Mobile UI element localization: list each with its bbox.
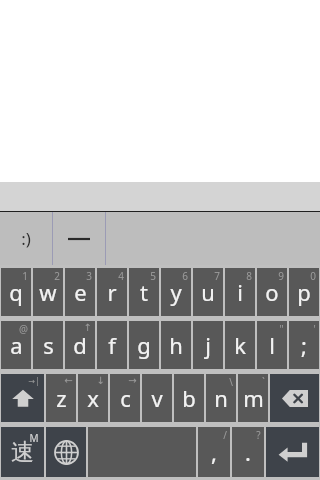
button[interactable]: o <box>257 268 287 316</box>
button[interactable]: p <box>289 268 319 316</box>
button[interactable]: Change keyboard language <box>46 427 86 477</box>
button[interactable]: 速 <box>1 427 44 477</box>
button[interactable]: x <box>78 374 108 422</box>
staticText: g <box>137 330 151 360</box>
button[interactable]: f <box>97 321 127 369</box>
button[interactable] <box>53 212 105 265</box>
button[interactable]: Enter <box>266 427 319 477</box>
button[interactable]: g <box>129 321 159 369</box>
staticText: ; <box>301 330 307 360</box>
button[interactable]: j <box>193 321 223 369</box>
staticText: ` <box>262 375 265 389</box>
staticText: l <box>269 330 275 360</box>
button[interactable]: y <box>161 268 191 316</box>
staticText: v <box>151 383 163 413</box>
button[interactable]: , <box>198 427 230 477</box>
staticText: n <box>214 383 228 413</box>
staticText: 9 <box>278 269 284 283</box>
staticText: 3 <box>86 269 92 283</box>
staticText: 1 <box>22 269 28 283</box>
staticText: " <box>279 322 284 336</box>
button[interactable]: :) <box>0 212 52 265</box>
staticText: , <box>211 437 217 467</box>
staticText: → <box>128 375 137 387</box>
staticText: / <box>223 428 227 442</box>
staticText: z <box>56 383 67 413</box>
button[interactable]: m <box>238 374 268 422</box>
button[interactable]: d <box>65 321 95 369</box>
staticText: m <box>243 383 264 413</box>
staticText: M <box>29 431 39 445</box>
staticText: 8 <box>246 269 252 283</box>
button[interactable]: s <box>33 321 63 369</box>
staticText: a <box>10 330 23 360</box>
button[interactable]: e <box>65 268 95 316</box>
button[interactable]: b <box>174 374 204 422</box>
button[interactable]: Backspace <box>270 374 319 422</box>
staticText: 2 <box>54 269 60 283</box>
button[interactable]: v <box>142 374 172 422</box>
staticText: e <box>74 277 87 307</box>
staticText: y <box>170 277 182 307</box>
button[interactable]: w <box>33 268 63 316</box>
staticText: ↓ <box>96 375 105 387</box>
staticText: o <box>265 277 279 307</box>
staticText: d <box>73 330 87 360</box>
staticText: h <box>169 330 183 360</box>
staticText: :) <box>21 227 31 250</box>
button[interactable]: i <box>225 268 255 316</box>
staticText: x <box>87 383 99 413</box>
button[interactable]: c <box>110 374 140 422</box>
button[interactable]: t <box>129 268 159 316</box>
staticText: ' <box>313 322 316 336</box>
staticText: b <box>182 383 196 413</box>
staticText: 速 <box>11 438 34 467</box>
staticText: 6 <box>182 269 188 283</box>
button[interactable]: r <box>97 268 127 316</box>
staticText: 5 <box>150 269 156 283</box>
staticText: j <box>205 330 211 360</box>
staticText: 0 <box>310 269 316 283</box>
button[interactable]: h <box>161 321 191 369</box>
staticText: i <box>237 277 243 307</box>
staticText: 7 <box>214 269 220 283</box>
button[interactable]: u <box>193 268 223 316</box>
staticText: k <box>234 330 246 360</box>
staticText: →| <box>28 375 40 386</box>
button[interactable]: q <box>1 268 31 316</box>
button[interactable]: n <box>206 374 236 422</box>
staticText: s <box>43 330 54 360</box>
button[interactable]: k <box>225 321 255 369</box>
button[interactable]: l <box>257 321 287 369</box>
button[interactable]: a <box>1 321 31 369</box>
staticText: r <box>107 277 117 307</box>
staticText: c <box>120 383 131 413</box>
staticText: ↑ <box>83 322 92 334</box>
staticText: ? <box>256 428 261 442</box>
button[interactable]: Shift <box>1 374 44 422</box>
staticText: w <box>39 277 57 307</box>
staticText: 4 <box>118 269 124 283</box>
button[interactable]: ; <box>289 321 319 369</box>
staticText: q <box>9 277 23 307</box>
button[interactable]: . <box>232 427 264 477</box>
staticText: f <box>108 330 116 360</box>
button[interactable]: z <box>46 374 76 422</box>
staticText: @ <box>19 322 28 336</box>
staticText: . <box>245 437 251 467</box>
staticText: ← <box>64 375 73 387</box>
staticText: u <box>201 277 215 307</box>
staticText: \ <box>229 375 233 389</box>
staticText: p <box>297 277 311 307</box>
staticText: t <box>140 277 148 307</box>
